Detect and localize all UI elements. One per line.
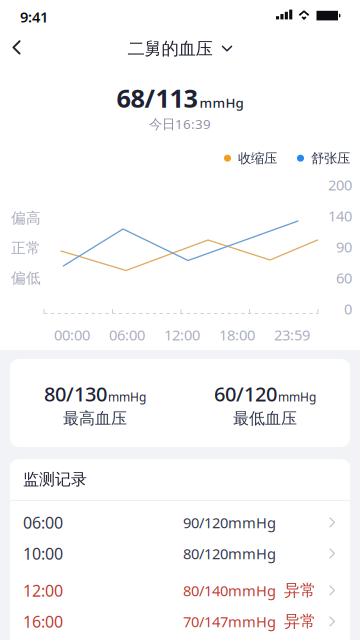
staticText: 80/120mmHg [183, 544, 276, 563]
button[interactable]: Back [2, 32, 31, 63]
button[interactable]: 06:00 [10, 507, 350, 538]
staticText: 06:00 [109, 325, 145, 344]
staticText: 今日16:39 [149, 115, 211, 133]
button[interactable]: 二舅的血压 [127, 38, 232, 59]
staticText: 异常 [284, 612, 316, 631]
staticText: 16:00 [23, 611, 63, 632]
staticText: 最低血压 [233, 409, 297, 428]
staticText: 舒张压 [311, 150, 350, 166]
staticText: 18:00 [219, 325, 255, 344]
button[interactable]: 10:00 [10, 538, 350, 569]
staticText: 90/120mmHg [183, 513, 276, 532]
staticText: 12:00 [23, 580, 63, 601]
staticText: 异常 [284, 581, 316, 600]
staticText: 监测记录 [23, 470, 87, 489]
staticText: 90 [336, 237, 352, 256]
staticText: 00:00 [54, 325, 90, 344]
button[interactable]: 12:00 [10, 575, 350, 606]
staticText: 06:00 [23, 512, 63, 533]
button[interactable]: 16:00 [10, 606, 350, 637]
staticText: 23:59 [274, 325, 310, 344]
staticText: 60 [336, 268, 352, 287]
staticText: 最高血压 [63, 409, 127, 428]
staticText: 0 [344, 299, 352, 318]
staticText: 80/140mmHg [183, 581, 276, 600]
staticText: 80/130 [44, 380, 107, 407]
staticText: 9:41 [20, 7, 48, 26]
staticText: mmHg [278, 389, 316, 405]
staticText: 正常 [11, 239, 41, 257]
staticText: 70/147mmHg [183, 612, 276, 631]
staticText: 二舅的血压 [127, 38, 212, 59]
staticText: 60/120 [214, 380, 277, 407]
staticText: mmHg [199, 94, 243, 111]
staticText: 140 [328, 206, 352, 225]
staticText: 收缩压 [238, 150, 277, 166]
staticText: mmHg [108, 389, 146, 405]
staticText: 68/113 [116, 81, 197, 115]
staticText: 12:00 [164, 325, 200, 344]
staticText: 偏低 [11, 269, 41, 287]
staticText: 偏高 [11, 209, 41, 227]
staticText: 10:00 [23, 543, 63, 564]
staticText: 200 [328, 175, 352, 194]
